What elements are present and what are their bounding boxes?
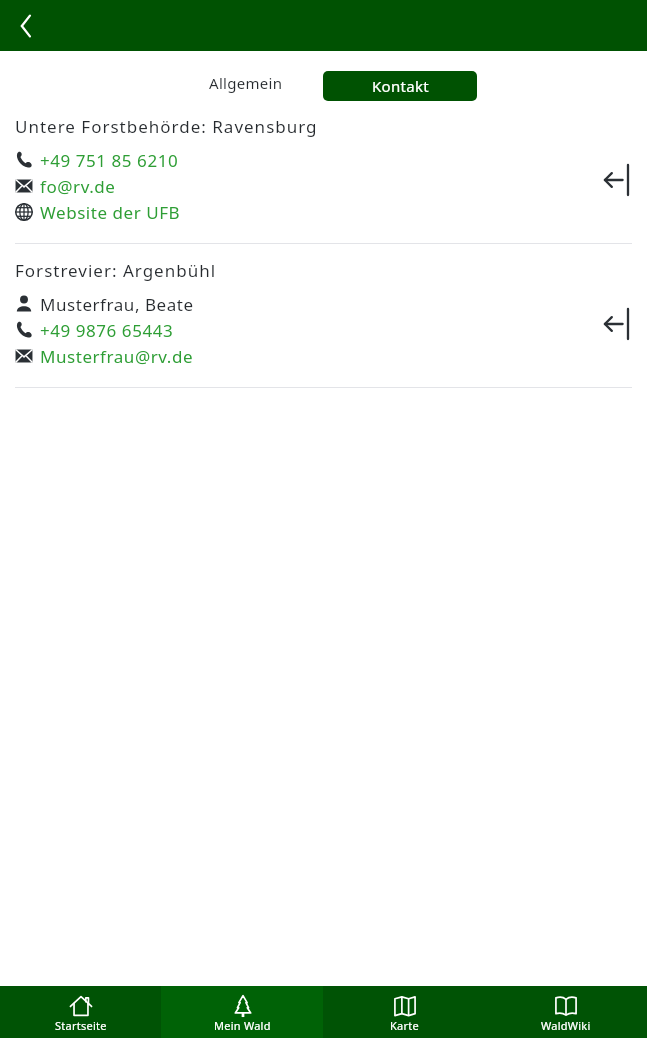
button[interactable]: Mein Wald <box>161 986 323 1038</box>
staticText: +49 751 85 6210 <box>40 149 179 172</box>
staticText: WaldWiki <box>541 1018 591 1033</box>
button[interactable]: Allgemein <box>209 73 283 103</box>
button[interactable]: Karte <box>323 986 485 1038</box>
staticText: Musterfrau@rv.de <box>40 345 194 368</box>
staticText: Website der UFB <box>40 201 181 224</box>
button[interactable]: Musterfrau@rv.de <box>0 343 587 369</box>
staticText: +49 9876 65443 <box>40 319 174 342</box>
staticText: Mein Wald <box>214 1018 271 1033</box>
staticText: Startseite <box>55 1018 107 1033</box>
button[interactable]: Navigate <box>587 291 647 369</box>
button[interactable]: fo@rv.de <box>0 173 587 199</box>
staticText: Karte <box>390 1018 419 1033</box>
button[interactable]: Back <box>4 4 48 48</box>
button[interactable]: +49 9876 65443 <box>0 317 587 343</box>
button[interactable]: Startseite <box>0 986 161 1038</box>
button[interactable]: WaldWiki <box>485 986 647 1038</box>
staticText: Allgemein <box>209 73 283 93</box>
button[interactable]: Musterfrau, Beate <box>0 291 587 317</box>
staticText: Kontakt <box>372 76 429 96</box>
staticText: Forstrevier: Argenbühl <box>15 259 217 282</box>
staticText: Untere Forstbehörde: Ravensburg <box>15 115 318 138</box>
staticText: fo@rv.de <box>40 175 116 198</box>
button[interactable]: +49 751 85 6210 <box>0 147 587 173</box>
button[interactable]: Navigate <box>587 147 647 225</box>
button[interactable]: Website der UFB <box>0 199 587 225</box>
staticText: Musterfrau, Beate <box>40 293 194 316</box>
button[interactable]: Kontakt <box>323 71 477 101</box>
